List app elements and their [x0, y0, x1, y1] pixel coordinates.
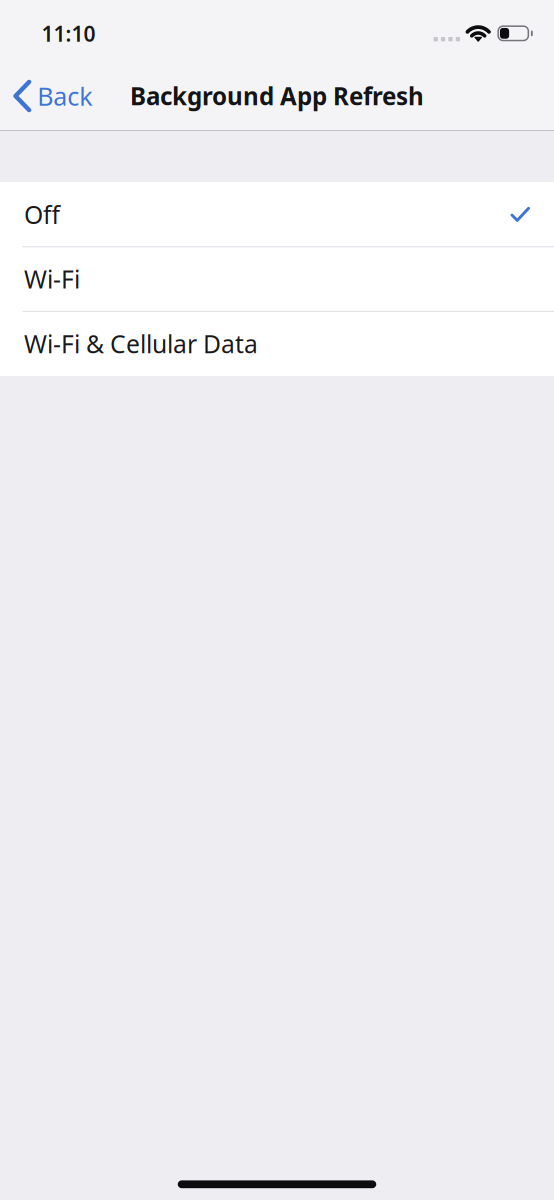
staticText: Wi-Fi	[24, 263, 80, 295]
staticText: Wi-Fi & Cellular Data	[24, 327, 258, 360]
button[interactable]: Wi-Fi & Cellular Data	[0, 311, 554, 376]
staticText: 11:10	[41, 19, 95, 47]
button[interactable]: Off	[0, 182, 554, 247]
button[interactable]: Wi-Fi	[0, 247, 554, 311]
staticText: Background App Refresh	[130, 80, 424, 112]
staticText: Back	[37, 79, 92, 113]
button[interactable]: Back	[0, 67, 102, 125]
staticText: Off	[24, 198, 60, 231]
